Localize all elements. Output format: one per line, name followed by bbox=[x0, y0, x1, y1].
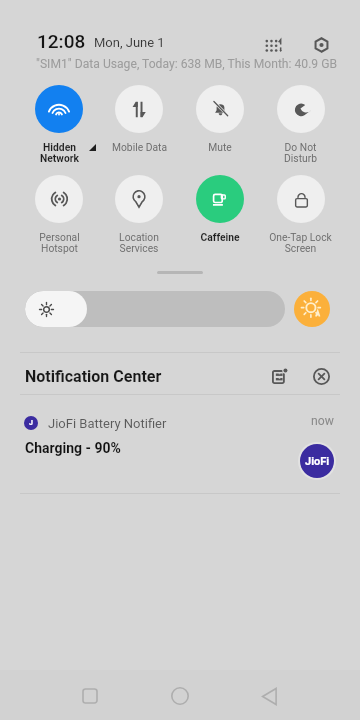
button[interactable]: Personal Hotspot bbox=[19, 175, 99, 255]
staticText: 12:08 bbox=[37, 30, 86, 52]
button[interactable]: Auto brightness bbox=[294, 291, 330, 327]
button[interactable]: Notification settings bbox=[267, 363, 293, 389]
staticText: Caffeine bbox=[200, 231, 240, 243]
staticText: Hidden Network bbox=[40, 141, 79, 165]
button[interactable]: Location Services bbox=[99, 175, 179, 255]
staticText: JioFi Battery Notifier bbox=[48, 416, 167, 431]
button[interactable]: Hidden Network bbox=[19, 85, 99, 165]
button[interactable]: Settings bbox=[307, 31, 335, 59]
button[interactable]: Recents bbox=[66, 672, 114, 720]
button[interactable]: Caffeine bbox=[179, 175, 260, 243]
button[interactable]: Do Not Disturb bbox=[260, 85, 341, 165]
staticText: Notification Center bbox=[25, 367, 162, 386]
staticText: now bbox=[311, 414, 334, 428]
staticText: Charging - 90% bbox=[25, 440, 121, 456]
staticText: Mobile Data bbox=[112, 141, 167, 153]
button[interactable]: J bbox=[0, 395, 360, 493]
staticText: Mon, June 1 bbox=[94, 35, 165, 50]
staticText: JioFi bbox=[305, 455, 330, 468]
button[interactable]: One-Tap Lock Screen bbox=[260, 175, 341, 255]
staticText: Location Services bbox=[119, 231, 159, 255]
button[interactable]: Brightness bbox=[25, 291, 285, 327]
button[interactable]: Home bbox=[156, 672, 204, 720]
staticText: Do Not Disturb bbox=[284, 141, 317, 165]
staticText: "SIM1" Data Usage, Today: 638 MB, This M… bbox=[36, 57, 338, 71]
staticText: Personal Hotspot bbox=[39, 231, 80, 255]
button[interactable]: Edit quick settings bbox=[261, 32, 287, 58]
staticText: One-Tap Lock Screen bbox=[269, 231, 332, 255]
button[interactable]: Mobile Data bbox=[99, 85, 179, 153]
staticText: Mute bbox=[208, 141, 232, 153]
button[interactable]: Clear all notifications bbox=[308, 363, 334, 389]
button[interactable]: Mute bbox=[179, 85, 260, 153]
staticText: J bbox=[29, 419, 33, 427]
button[interactable]: Back bbox=[245, 672, 293, 720]
